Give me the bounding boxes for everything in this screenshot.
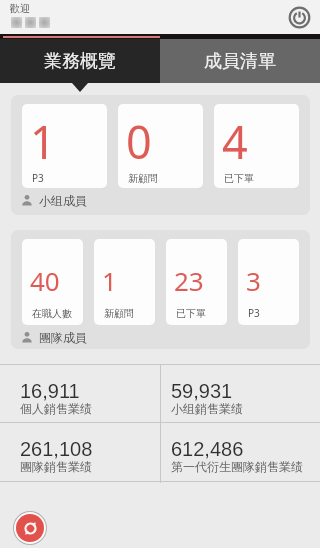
button[interactable]: 0 — [118, 104, 203, 188]
staticText: 261,108 — [20, 438, 93, 460]
staticText: 23 — [174, 263, 204, 298]
staticText: 59,931 — [171, 380, 233, 402]
button[interactable]: 1 — [22, 104, 107, 188]
button[interactable]: 261,108 — [0, 422, 160, 480]
button[interactable]: 3 — [238, 239, 299, 325]
button[interactable]: 16,911 — [0, 364, 160, 422]
staticText: 團隊銷售業绩 — [20, 459, 92, 474]
staticText: P3 — [32, 171, 44, 185]
staticText: 0 — [126, 111, 152, 172]
staticText: 新顧問 — [104, 307, 134, 320]
button[interactable]: 59,931 — [160, 364, 320, 422]
button[interactable]: 4 — [214, 104, 299, 188]
button[interactable]: 40 — [22, 239, 83, 325]
staticText: 小组成員 — [39, 193, 87, 207]
staticText: 個人銷售業绩 — [20, 401, 92, 416]
staticText: 歡迎 — [10, 2, 30, 15]
staticText: 3 — [246, 263, 261, 298]
button[interactable]: 23 — [166, 239, 227, 325]
button[interactable]: 成員清單 — [160, 39, 320, 83]
staticText: 團隊成員 — [39, 330, 87, 344]
button[interactable]: Refresh — [16, 514, 44, 542]
button[interactable]: 612,486 — [160, 422, 320, 480]
staticText: 成員清單 — [204, 50, 276, 73]
staticText: 第一代衍生團隊銷售業绩 — [171, 459, 303, 474]
staticText: 業務概覽 — [44, 50, 116, 73]
staticText: 1 — [102, 263, 117, 298]
staticText: 16,911 — [20, 380, 80, 402]
staticText: 1 — [30, 111, 56, 172]
button[interactable]: 業務概覽 — [0, 39, 160, 83]
staticText: 已下單 — [224, 172, 254, 185]
button[interactable]: 1 — [94, 239, 155, 325]
staticText: 已下單 — [176, 307, 206, 320]
staticText: P3 — [248, 306, 260, 320]
staticText: 612,486 — [171, 438, 244, 460]
staticText: 40 — [30, 263, 60, 298]
staticText: 新顧問 — [128, 172, 158, 185]
staticText: 在職人數 — [32, 307, 72, 320]
staticText: 小组銷售業绩 — [171, 401, 243, 416]
staticText: 4 — [222, 111, 248, 172]
button[interactable]: Logout — [287, 5, 311, 29]
